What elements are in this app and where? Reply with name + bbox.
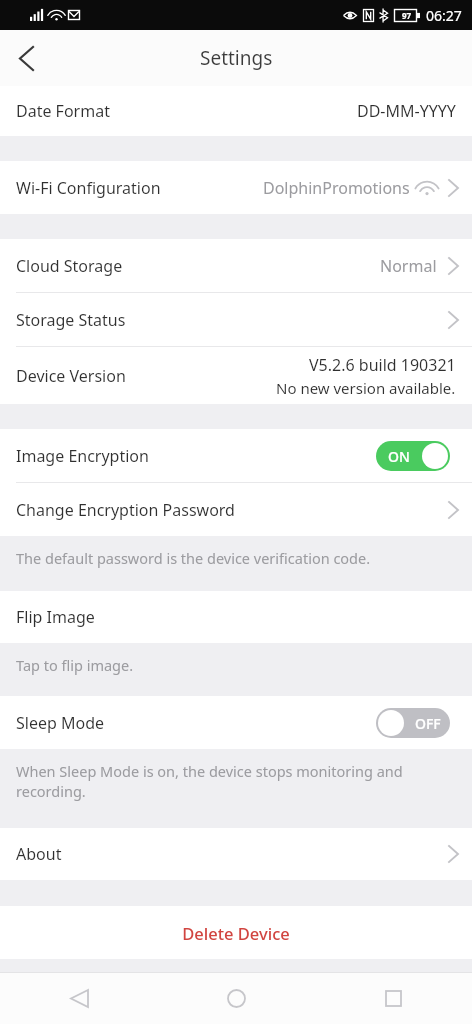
staticText: Cloud Storage — [16, 255, 123, 277]
staticText: Flip Image — [16, 606, 95, 628]
staticText: Date Format — [16, 100, 110, 122]
button[interactable]: Back — [0, 973, 158, 1024]
staticText: The default password is the device verif… — [16, 548, 371, 568]
button[interactable]: Storage Status — [0, 293, 472, 346]
button[interactable]: ON — [376, 441, 450, 471]
button[interactable]: Sleep Mode — [0, 696, 472, 749]
staticText: V5.2.6 build 190321 — [309, 354, 456, 376]
staticText: OFF — [415, 714, 441, 733]
staticText: Tap to flip image. — [16, 655, 134, 675]
button[interactable]: Date Format — [0, 86, 472, 136]
staticText: Change Encryption Password — [16, 499, 235, 521]
button[interactable]: OFF — [376, 708, 450, 738]
staticText: Wi-Fi Configuration — [16, 177, 161, 199]
staticText: Delete Device — [182, 922, 290, 944]
staticText: When Sleep Mode is on, the device stops … — [16, 761, 456, 802]
button[interactable]: Device Version — [0, 347, 472, 404]
staticText: Storage Status — [16, 309, 126, 331]
button[interactable]: About — [0, 828, 472, 880]
button[interactable]: Delete Device — [0, 906, 472, 959]
button[interactable]: Image Encryption — [0, 429, 472, 482]
staticText: Sleep Mode — [16, 712, 105, 734]
button[interactable]: Flip Image — [0, 591, 472, 643]
button[interactable]: Change Encryption Password — [0, 483, 472, 536]
button[interactable]: Cloud Storage — [0, 239, 472, 292]
staticText: About — [16, 843, 62, 865]
staticText: Settings — [200, 45, 273, 71]
staticText: Normal — [380, 255, 437, 277]
button[interactable]: Back — [0, 32, 52, 84]
button[interactable]: Wi-Fi Configuration — [0, 161, 472, 214]
button[interactable]: Recent apps — [315, 973, 472, 1024]
staticText: No new version available. — [276, 378, 456, 398]
staticText: 97 — [402, 10, 412, 21]
staticText: ON — [388, 447, 410, 466]
staticText: Image Encryption — [16, 445, 149, 467]
staticText: Device Version — [16, 365, 126, 387]
button[interactable]: Home — [158, 973, 315, 1024]
staticText: DD-MM-YYYY — [357, 100, 456, 122]
staticText: 06:27 — [426, 6, 462, 25]
staticText: DolphinPromotions — [263, 177, 410, 199]
